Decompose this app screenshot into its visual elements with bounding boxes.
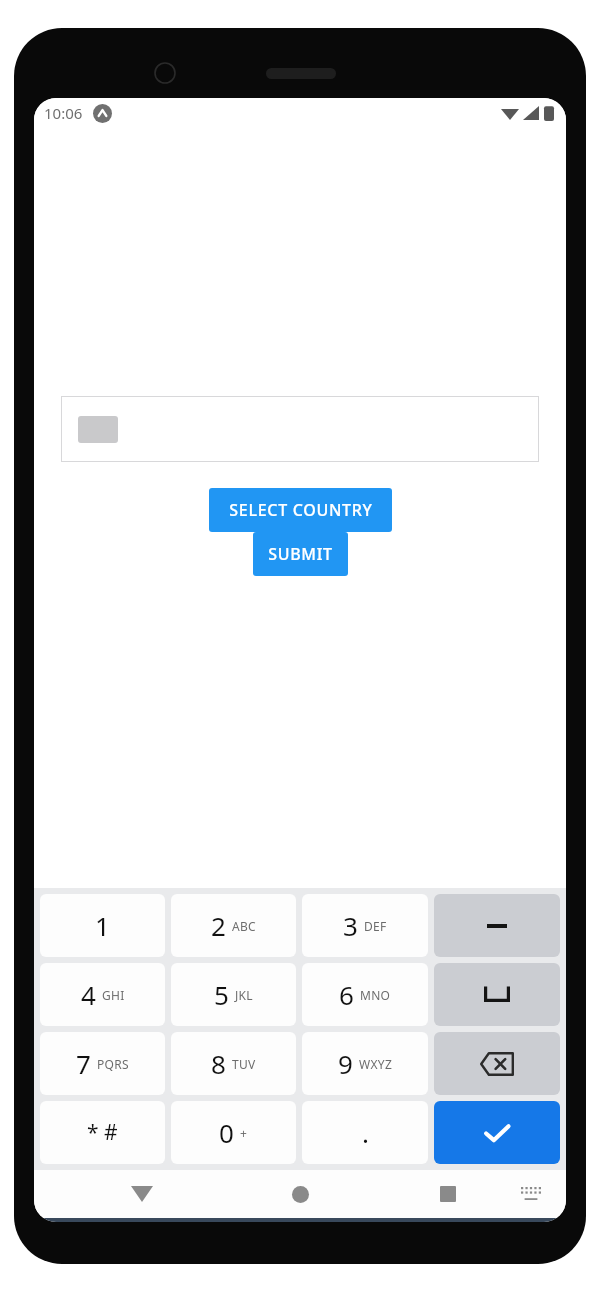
staticText: MNO: [360, 987, 391, 1003]
staticText: .: [362, 1115, 369, 1150]
button[interactable]: 7: [40, 1032, 165, 1095]
staticText: JKL: [235, 987, 253, 1003]
button[interactable]: Switch keyboard: [514, 1177, 548, 1211]
staticText: +: [240, 1125, 248, 1141]
staticText: 7: [76, 1046, 91, 1081]
staticText: SUBMIT: [268, 543, 333, 565]
button[interactable]: 9: [302, 1032, 428, 1095]
staticText: 3: [343, 908, 358, 943]
staticText: SELECT COUNTRY: [229, 499, 373, 521]
button[interactable]: .: [302, 1101, 428, 1164]
button[interactable]: 4: [40, 963, 165, 1026]
staticText: 9: [338, 1046, 353, 1081]
staticText: 5: [214, 977, 229, 1012]
staticText: 8: [211, 1046, 226, 1081]
button[interactable]: SELECT COUNTRY: [209, 488, 392, 532]
button[interactable]: 2: [171, 894, 296, 957]
staticText: PQRS: [97, 1056, 129, 1072]
staticText: TUV: [232, 1056, 256, 1072]
staticText: GHI: [102, 987, 125, 1003]
button[interactable]: 5: [171, 963, 296, 1026]
button[interactable]: Hide keyboard: [122, 1174, 162, 1214]
button[interactable]: Recents: [428, 1174, 468, 1214]
button[interactable]: 0: [171, 1101, 296, 1164]
staticText: WXYZ: [359, 1056, 393, 1072]
staticText: 1: [95, 908, 110, 943]
staticText: 4: [81, 977, 96, 1012]
button[interactable]: 3: [302, 894, 428, 957]
staticText: * #: [87, 1118, 118, 1147]
button[interactable]: Backspace: [434, 1032, 560, 1095]
staticText: 10:06: [44, 103, 83, 123]
staticText: 2: [211, 908, 226, 943]
staticText: ABC: [232, 918, 256, 934]
button[interactable]: 8: [171, 1032, 296, 1095]
staticText: DEF: [364, 918, 387, 934]
button[interactable]: 1: [40, 894, 165, 957]
button[interactable]: Home: [280, 1174, 320, 1214]
staticText: 0: [219, 1115, 234, 1150]
staticText: 6: [339, 977, 354, 1012]
button[interactable]: Enter: [434, 1101, 560, 1164]
button[interactable]: 6: [302, 963, 428, 1026]
button[interactable]: * #: [40, 1101, 165, 1164]
button[interactable]: Space: [434, 963, 560, 1026]
button[interactable]: SUBMIT: [253, 532, 348, 576]
button[interactable]: Dash: [434, 894, 560, 957]
button[interactable]: [61, 396, 539, 462]
